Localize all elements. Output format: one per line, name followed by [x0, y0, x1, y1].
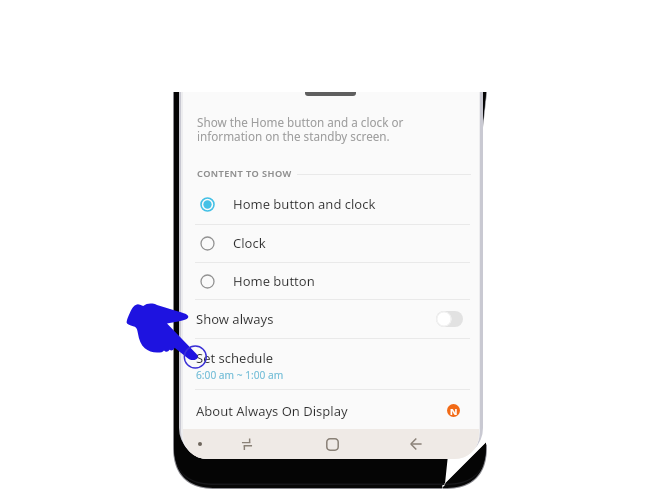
- staticText: Home button and clock: [233, 195, 376, 213]
- staticText: About Always On Display: [196, 402, 348, 420]
- button[interactable]: Show always: [183, 300, 479, 338]
- button[interactable]: Home button: [183, 262, 479, 300]
- staticText: Home button: [233, 272, 315, 290]
- staticText: Clock: [233, 234, 266, 252]
- staticText: Show always: [196, 310, 274, 328]
- staticText: 6:00 am ~ 1:00 am: [196, 368, 284, 382]
- button[interactable]: Recents: [231, 429, 263, 459]
- staticText: Show the Home button and a clock or info…: [197, 114, 404, 145]
- button[interactable]: Back: [400, 429, 432, 459]
- button[interactable]: Set schedule: [183, 341, 479, 389]
- button[interactable]: Clock: [183, 224, 479, 262]
- button[interactable]: Home button and clock: [183, 185, 479, 223]
- button[interactable]: About Always On Display: [183, 391, 479, 430]
- staticText: N: [450, 405, 458, 417]
- staticText: CONTENT TO SHOW: [197, 167, 292, 180]
- button[interactable]: Home: [316, 429, 348, 459]
- staticText: Set schedule: [196, 349, 274, 367]
